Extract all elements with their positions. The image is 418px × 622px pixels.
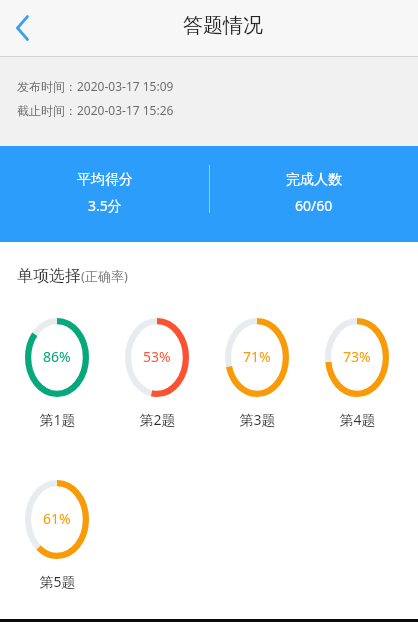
staticText: 第4题 [339, 410, 376, 429]
staticText: 53% [143, 347, 171, 366]
button[interactable]: 平均得分 [0, 172, 209, 216]
button[interactable]: 71% [225, 318, 289, 429]
staticText: 截止时间：2020-03-17 15:26 [17, 102, 174, 118]
staticText: 71% [243, 347, 271, 366]
staticText: 答题情况 [183, 13, 263, 38]
button[interactable]: 61% [25, 480, 89, 591]
staticText: 发布时间：2020-03-17 15:09 [17, 78, 174, 94]
staticText: 第2题 [139, 410, 176, 429]
staticText: 第5题 [39, 572, 76, 591]
staticText: 完成人数 [286, 171, 342, 189]
staticText: 平均得分 [77, 171, 133, 189]
staticText: 61% [43, 509, 71, 528]
staticText: (正确率) [81, 267, 128, 285]
staticText: 第3题 [239, 410, 276, 429]
button[interactable]: Back [0, 0, 50, 56]
staticText: 60/60 [295, 196, 333, 215]
staticText: 单项选择 [17, 266, 81, 286]
button[interactable]: 73% [325, 318, 389, 429]
staticText: 第1题 [39, 410, 76, 429]
staticText: 3.5分 [88, 196, 122, 215]
button[interactable]: 53% [125, 318, 189, 429]
staticText: 86% [43, 347, 71, 366]
button[interactable]: 86% [25, 318, 89, 429]
staticText: 73% [343, 347, 371, 366]
button[interactable]: 完成人数 [209, 172, 418, 216]
